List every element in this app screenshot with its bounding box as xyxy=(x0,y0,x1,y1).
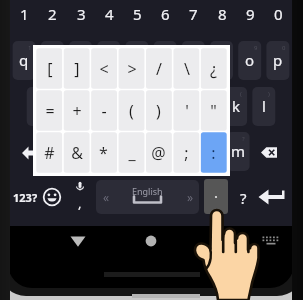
button[interactable]: 5 xyxy=(125,41,149,79)
staticText: / xyxy=(156,58,162,80)
button[interactable]: 0 xyxy=(264,2,292,26)
staticText: 9 xyxy=(254,44,258,52)
staticText: » xyxy=(187,189,194,205)
staticText: o xyxy=(245,50,255,70)
button[interactable]: / xyxy=(145,48,172,90)
button[interactable]: Home xyxy=(135,228,167,254)
staticText: + xyxy=(72,100,82,122)
button[interactable]: Enter xyxy=(256,186,288,210)
staticText: 0 xyxy=(282,44,286,52)
staticText: 123? xyxy=(13,190,38,205)
button[interactable]: * xyxy=(57,132,81,170)
button[interactable]: \ xyxy=(173,48,200,90)
staticText: 5 xyxy=(133,4,142,24)
button[interactable]: ? xyxy=(233,187,253,208)
button[interactable]: 5 xyxy=(123,2,151,26)
button[interactable]: & xyxy=(63,132,90,174)
button[interactable]: Emoji xyxy=(43,188,62,207)
staticText: # xyxy=(44,142,55,164)
button[interactable]: # xyxy=(36,132,63,174)
staticText: 8 xyxy=(218,4,227,24)
button[interactable]: 9 xyxy=(238,41,262,79)
button[interactable]: + xyxy=(195,87,219,125)
button[interactable]: ; xyxy=(173,132,200,174)
button[interactable]: , xyxy=(72,194,88,210)
button[interactable]: ' xyxy=(113,132,137,170)
staticText: - xyxy=(101,100,107,122)
staticText: , xyxy=(78,194,82,210)
staticText: l xyxy=(262,96,266,116)
button[interactable]: " xyxy=(200,90,227,132)
staticText: English xyxy=(132,185,163,197)
button[interactable]: # xyxy=(54,87,78,125)
button[interactable]: 1 xyxy=(10,2,38,26)
button[interactable]: 7 xyxy=(181,41,205,79)
button[interactable]: < xyxy=(90,48,117,90)
button[interactable]: - xyxy=(167,87,191,125)
button[interactable]: Back xyxy=(62,228,94,254)
button[interactable]: @ xyxy=(145,132,172,174)
button[interactable]: & xyxy=(139,87,163,125)
button[interactable]: 3 xyxy=(69,41,93,79)
button[interactable]: [ xyxy=(36,48,63,90)
button[interactable]: 6 xyxy=(153,41,177,79)
button[interactable]: * xyxy=(90,132,117,174)
button[interactable]: - xyxy=(90,90,117,132)
button[interactable]: 0 xyxy=(266,41,290,79)
button[interactable]: Period xyxy=(204,179,228,214)
button[interactable]: ' xyxy=(173,90,200,132)
button[interactable]: 6 xyxy=(151,2,179,26)
button[interactable]: = xyxy=(36,90,63,132)
staticText: 1 xyxy=(28,44,32,52)
button[interactable]: ( xyxy=(224,87,248,125)
staticText: 8 xyxy=(226,44,230,52)
button[interactable]: % xyxy=(111,87,135,125)
staticText: ) xyxy=(156,100,161,122)
button[interactable]: > xyxy=(118,48,145,90)
button[interactable]: 8 xyxy=(210,41,234,79)
button[interactable]: Space xyxy=(96,180,199,214)
button[interactable]: 1 xyxy=(12,41,36,79)
button[interactable]: $ xyxy=(83,87,107,125)
button[interactable]: 2 xyxy=(38,2,66,26)
button[interactable]: ¿ xyxy=(200,48,227,90)
button[interactable]: 4 xyxy=(95,2,123,26)
button[interactable]: Shift xyxy=(13,141,35,164)
staticText: 3 xyxy=(77,4,86,24)
button[interactable]: ) xyxy=(252,87,276,125)
button[interactable]: ! xyxy=(198,132,222,170)
button[interactable]: ; xyxy=(170,132,194,170)
button[interactable]: 3 xyxy=(67,2,95,26)
button[interactable]: 8 xyxy=(208,2,236,26)
staticText: * xyxy=(99,142,108,164)
staticText: & xyxy=(71,142,83,164)
staticText: ? xyxy=(242,135,245,143)
staticText: n xyxy=(205,141,215,161)
button[interactable]: 7 xyxy=(179,2,207,26)
button[interactable]: Backspace xyxy=(258,141,282,164)
button[interactable]: 123? xyxy=(12,186,38,208)
button[interactable]: Switch keyboard xyxy=(259,231,283,251)
button[interactable]: " xyxy=(85,132,109,170)
button[interactable]: @ xyxy=(26,87,50,125)
button[interactable]: Voice input xyxy=(72,180,89,194)
button[interactable]: 4 xyxy=(97,41,121,79)
button[interactable]: ) xyxy=(145,90,172,132)
button[interactable]: _ xyxy=(118,132,145,174)
button[interactable]: 9 xyxy=(236,2,264,26)
button[interactable]: ( xyxy=(118,90,145,132)
button[interactable]: : xyxy=(142,132,166,170)
button[interactable]: ] xyxy=(63,48,90,90)
button[interactable]: ? xyxy=(226,132,250,170)
staticText: z xyxy=(65,141,73,161)
button[interactable]: 2 xyxy=(40,41,64,79)
button[interactable]: : xyxy=(200,132,227,174)
staticText: m xyxy=(231,141,246,161)
staticText: 6 xyxy=(169,44,173,52)
staticText: ' xyxy=(185,100,189,122)
button[interactable]: + xyxy=(63,90,90,132)
